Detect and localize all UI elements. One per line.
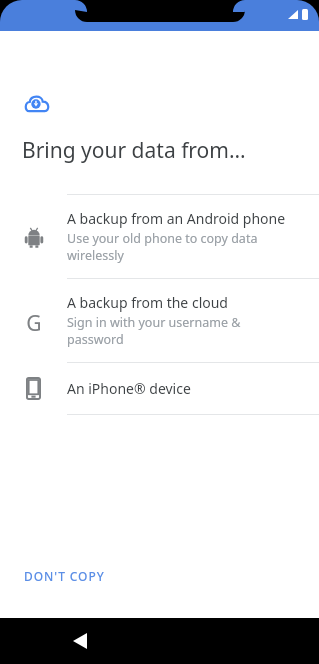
other: Android phone	[23, 225, 45, 249]
staticText: DON'T COPY	[24, 568, 105, 584]
other: iPhone device	[26, 377, 41, 400]
button[interactable]: Android phone	[0, 195, 319, 278]
button[interactable]: Google account	[0, 279, 319, 362]
staticText: A backup from the cloud	[67, 293, 228, 312]
button[interactable]: DON'T COPY	[12, 560, 117, 592]
staticText: Bring your data from…	[22, 136, 246, 165]
staticText: G	[26, 309, 42, 333]
button[interactable]: iPhone device	[0, 363, 319, 414]
staticText: Sign in with your username & password	[67, 314, 241, 348]
staticText: An iPhone® device	[67, 379, 191, 398]
staticText: Use your old phone to copy data wireless…	[67, 230, 258, 264]
button[interactable]: Back	[60, 621, 100, 661]
staticText: A backup from an Android phone	[67, 209, 286, 228]
other: Google account	[22, 309, 46, 333]
